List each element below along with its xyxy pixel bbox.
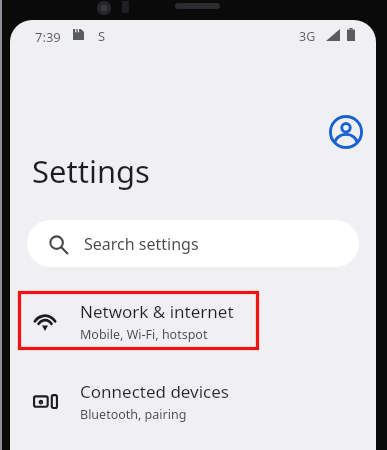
staticText: S: [98, 27, 106, 45]
staticText: 7:39: [35, 28, 61, 46]
staticText: Settings: [32, 150, 150, 192]
button[interactable]: Account: [323, 109, 369, 155]
staticText: Bluetooth, pairing: [80, 406, 187, 423]
button[interactable]: Network and internet: [10, 292, 376, 351]
other: Network and internet: [32, 309, 58, 335]
staticText: Mobile, Wi-Fi, hotspot: [80, 326, 208, 343]
staticText: Search settings: [84, 233, 199, 255]
staticText: Network & internet: [80, 300, 234, 323]
other: Connected devices: [33, 389, 58, 414]
staticText: Connected devices: [80, 380, 230, 403]
staticText: 3G: [299, 28, 316, 45]
button[interactable]: Connected devices: [10, 372, 376, 431]
button[interactable]: Search settings: [27, 220, 359, 267]
